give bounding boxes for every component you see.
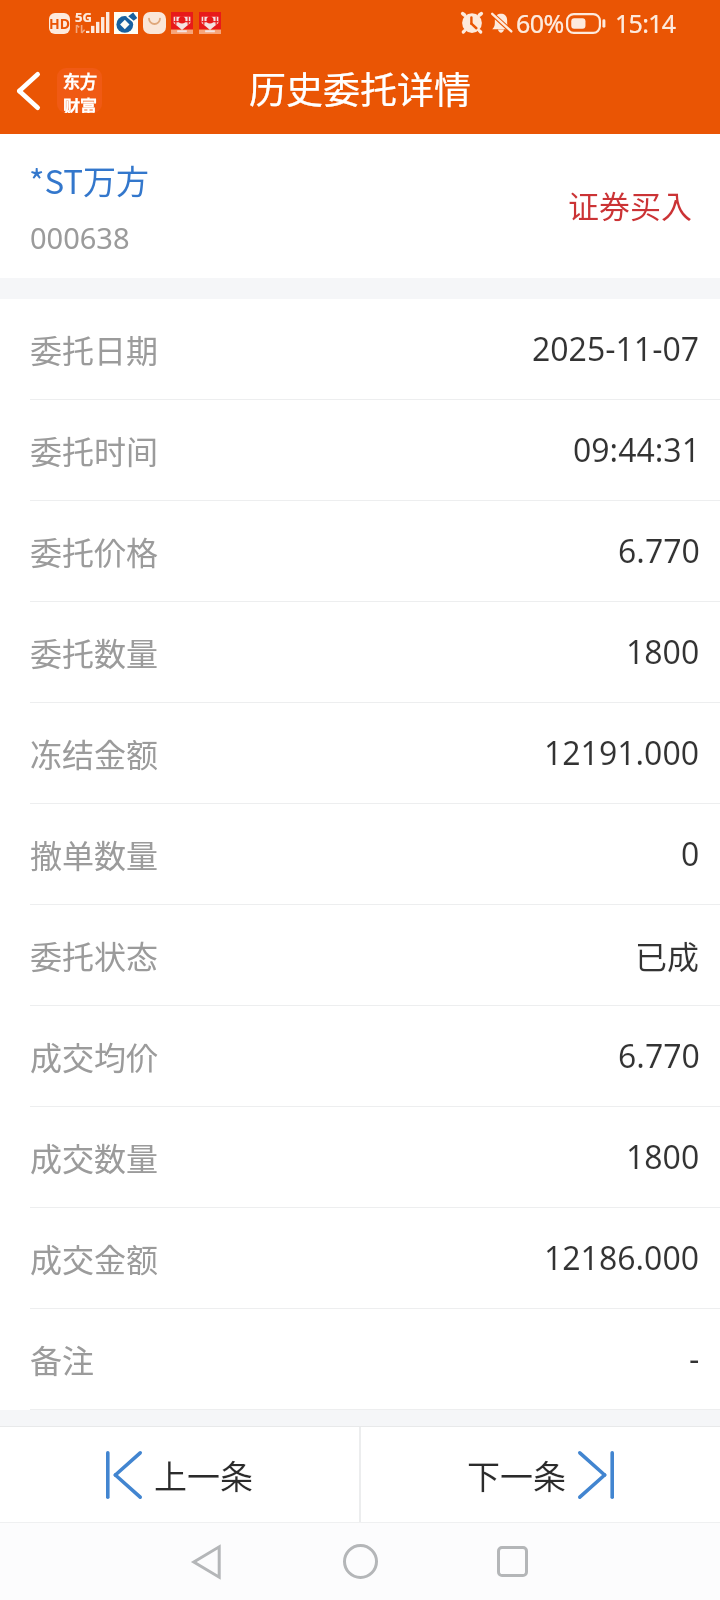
button[interactable]: 备注 xyxy=(0,1309,720,1410)
button[interactable]: 冻结金额 xyxy=(0,703,720,804)
button[interactable]: 成交数量 xyxy=(0,1107,720,1208)
staticText: 委托状态 xyxy=(30,932,159,978)
staticText: 委托时间 xyxy=(30,427,159,473)
staticText: 60% xyxy=(516,6,564,40)
staticText: 撤单数量 xyxy=(30,831,159,877)
staticText: 成交均价 xyxy=(30,1033,159,1079)
button[interactable]: 委托时间 xyxy=(0,400,720,501)
staticText: 财富 xyxy=(63,93,97,113)
staticText: 下一条 xyxy=(467,1451,566,1499)
button[interactable]: Back xyxy=(0,56,56,126)
staticText: 1800 xyxy=(626,1135,700,1179)
button[interactable]: 撤单数量 xyxy=(0,804,720,905)
staticText: *ST万方 xyxy=(29,156,150,204)
staticText: 2025-11-07 xyxy=(532,327,700,371)
button[interactable]: 委托日期 xyxy=(0,299,720,400)
staticText: - xyxy=(689,1337,700,1381)
staticText: 6.770 xyxy=(618,529,700,573)
button[interactable]: 委托数量 xyxy=(0,602,720,703)
button[interactable]: Recent apps xyxy=(458,1523,566,1600)
staticText: 证券买入 xyxy=(568,182,692,227)
button[interactable]: 上一条 xyxy=(0,1427,359,1522)
button[interactable]: 东方财富 xyxy=(57,68,102,113)
staticText: 历史委托详情 xyxy=(249,61,471,115)
staticText: 15:14 xyxy=(615,6,676,40)
staticText: 1800 xyxy=(626,630,700,674)
staticText: 成交数量 xyxy=(30,1134,159,1180)
staticText: 备注 xyxy=(30,1336,95,1382)
button[interactable]: 下一条 xyxy=(361,1427,720,1522)
staticText: 09:44:31 xyxy=(573,428,700,472)
staticText: 12191.000 xyxy=(544,731,700,775)
staticText: 成交金额 xyxy=(30,1235,159,1281)
staticText: 委托价格 xyxy=(30,528,159,574)
staticText: 委托数量 xyxy=(30,629,159,675)
staticText: 000638 xyxy=(30,218,130,257)
button[interactable]: Home xyxy=(306,1523,414,1600)
staticText: 东方 xyxy=(63,68,97,93)
staticText: 已成 xyxy=(635,932,700,978)
button[interactable]: 成交均价 xyxy=(0,1006,720,1107)
staticText: 6.770 xyxy=(618,1034,700,1078)
staticText: 12186.000 xyxy=(544,1236,700,1280)
staticText: 冻结金额 xyxy=(30,730,159,776)
button[interactable]: Back xyxy=(152,1523,260,1600)
staticText: 0 xyxy=(681,832,700,876)
staticText: 上一条 xyxy=(154,1451,253,1499)
button[interactable]: 委托状态 xyxy=(0,905,720,1006)
staticText: 委托日期 xyxy=(30,326,159,372)
staticText: HD xyxy=(49,14,70,33)
button[interactable]: 委托价格 xyxy=(0,501,720,602)
button[interactable]: 成交金额 xyxy=(0,1208,720,1309)
staticText: 5G xyxy=(75,8,92,26)
